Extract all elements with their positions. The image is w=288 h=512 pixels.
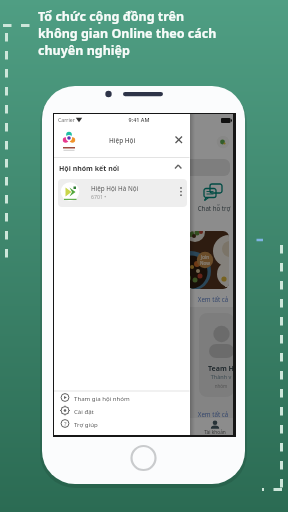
staticText: không gian Online theo cách	[38, 25, 217, 42]
staticText: Hiệp Hội	[109, 136, 136, 145]
staticText: Carrier	[58, 116, 75, 123]
staticText: Join	[198, 254, 212, 260]
staticText: Thành v	[203, 373, 233, 380]
staticText: Xem tất cả	[195, 410, 231, 418]
staticText: 6701 •	[91, 193, 107, 200]
staticText: Team H	[203, 364, 233, 374]
button[interactable]	[58, 179, 187, 207]
button[interactable]	[54, 392, 190, 405]
staticText: Hiệp Hội Hà Nội	[91, 184, 139, 193]
staticText: Hội nhóm kết nối	[59, 164, 120, 174]
staticText: Trợ giúp	[74, 420, 98, 428]
staticText: chuyên nghiệp	[38, 42, 130, 59]
staticText: ?	[64, 420, 67, 428]
staticText: Tổ chức cộng đồng trên	[38, 8, 185, 25]
button[interactable]	[54, 418, 190, 431]
staticText: Cài đặt	[74, 407, 94, 415]
staticText: Tham gia hội nhóm	[74, 394, 130, 402]
staticText: 9:41 AM	[127, 116, 151, 123]
staticText: Now	[198, 260, 212, 266]
button[interactable]	[54, 405, 190, 418]
staticText: nhóm	[203, 383, 233, 389]
staticText: Chat hỗ trợ	[195, 204, 233, 212]
staticText: Xem tất cả	[195, 295, 231, 303]
staticText: Tài khoản	[201, 429, 229, 435]
